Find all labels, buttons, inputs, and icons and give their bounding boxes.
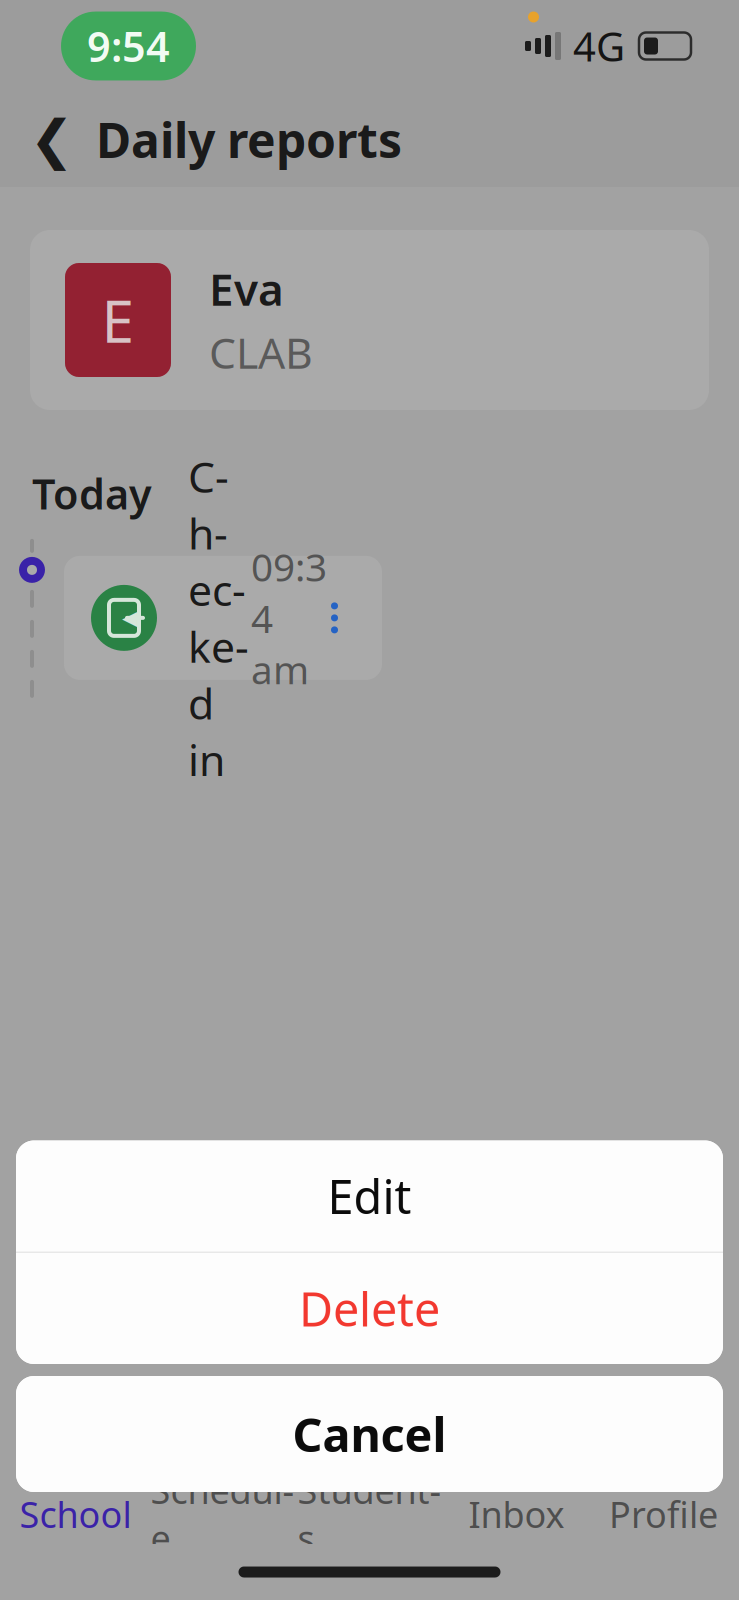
- staticText: ◀: [122, 606, 137, 629]
- staticText: Today: [32, 466, 152, 521]
- button[interactable]: School: [2, 1484, 149, 1544]
- button[interactable]: Back: [20, 101, 84, 177]
- staticText: E: [101, 281, 134, 359]
- staticText: ❮: [29, 109, 74, 170]
- staticText: Delete: [299, 1277, 440, 1339]
- button[interactable]: Schedule: [149, 1484, 296, 1544]
- button[interactable]: Cancel: [16, 1376, 723, 1492]
- staticText: Profile: [609, 1490, 718, 1538]
- staticText: 9:54: [87, 19, 170, 73]
- staticText: Edit: [327, 1165, 411, 1227]
- staticText: School: [19, 1490, 131, 1538]
- staticText: CLAB: [209, 324, 313, 381]
- button[interactable]: Edit: [16, 1140, 723, 1251]
- button[interactable]: ◀: [64, 556, 382, 680]
- staticText: Checked in: [188, 448, 249, 788]
- button[interactable]: Inbox: [443, 1484, 590, 1544]
- staticText: Cancel: [292, 1403, 446, 1465]
- button[interactable]: Profile: [590, 1484, 737, 1544]
- button[interactable]: Students: [296, 1484, 443, 1544]
- staticText: Schedule: [150, 1466, 294, 1562]
- staticText: 4G: [573, 19, 625, 72]
- staticText: Students: [297, 1466, 441, 1562]
- staticText: Daily reports: [96, 108, 402, 171]
- staticText: 09:34 am: [251, 541, 327, 695]
- button[interactable]: E: [0, 230, 739, 410]
- staticText: Inbox: [468, 1490, 564, 1538]
- button[interactable]: Delete: [16, 1253, 723, 1364]
- staticText: Eva: [209, 259, 284, 318]
